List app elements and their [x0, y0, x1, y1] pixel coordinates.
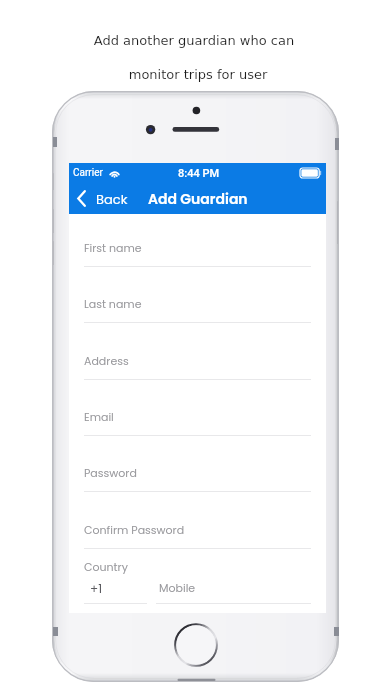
staticText: Mobile — [159, 580, 196, 595]
staticText: Carrier — [73, 167, 103, 179]
staticText: Country — [84, 559, 128, 574]
button[interactable]: Password — [69, 446, 326, 492]
button[interactable]: First name — [69, 221, 326, 267]
button[interactable]: Back — [69, 183, 131, 214]
staticText: Email — [84, 409, 114, 424]
button[interactable]: Address — [69, 334, 326, 380]
staticText: Back — [96, 190, 128, 208]
staticText: 8:44 PM — [178, 167, 220, 180]
staticText: Last name — [84, 296, 142, 311]
staticText: Add another guardian who can — [0, 33, 390, 48]
staticText: monitor trips for user — [2, 67, 392, 82]
staticText: Password — [84, 465, 137, 480]
button[interactable]: Country — [69, 556, 147, 604]
other: Battery — [300, 168, 321, 178]
button[interactable]: Confirm Password — [69, 503, 326, 549]
button[interactable]: Last name — [69, 277, 326, 323]
other: Home — [174, 623, 218, 667]
button[interactable]: Mobile — [156, 556, 311, 604]
staticText: Address — [84, 353, 129, 368]
button[interactable]: Email — [69, 390, 326, 436]
staticText: +1 — [90, 580, 103, 597]
other: Wi-Fi — [109, 169, 120, 178]
staticText: Confirm Password — [84, 522, 185, 537]
staticText: First name — [84, 240, 142, 255]
staticText: Add Guardian — [148, 189, 248, 209]
